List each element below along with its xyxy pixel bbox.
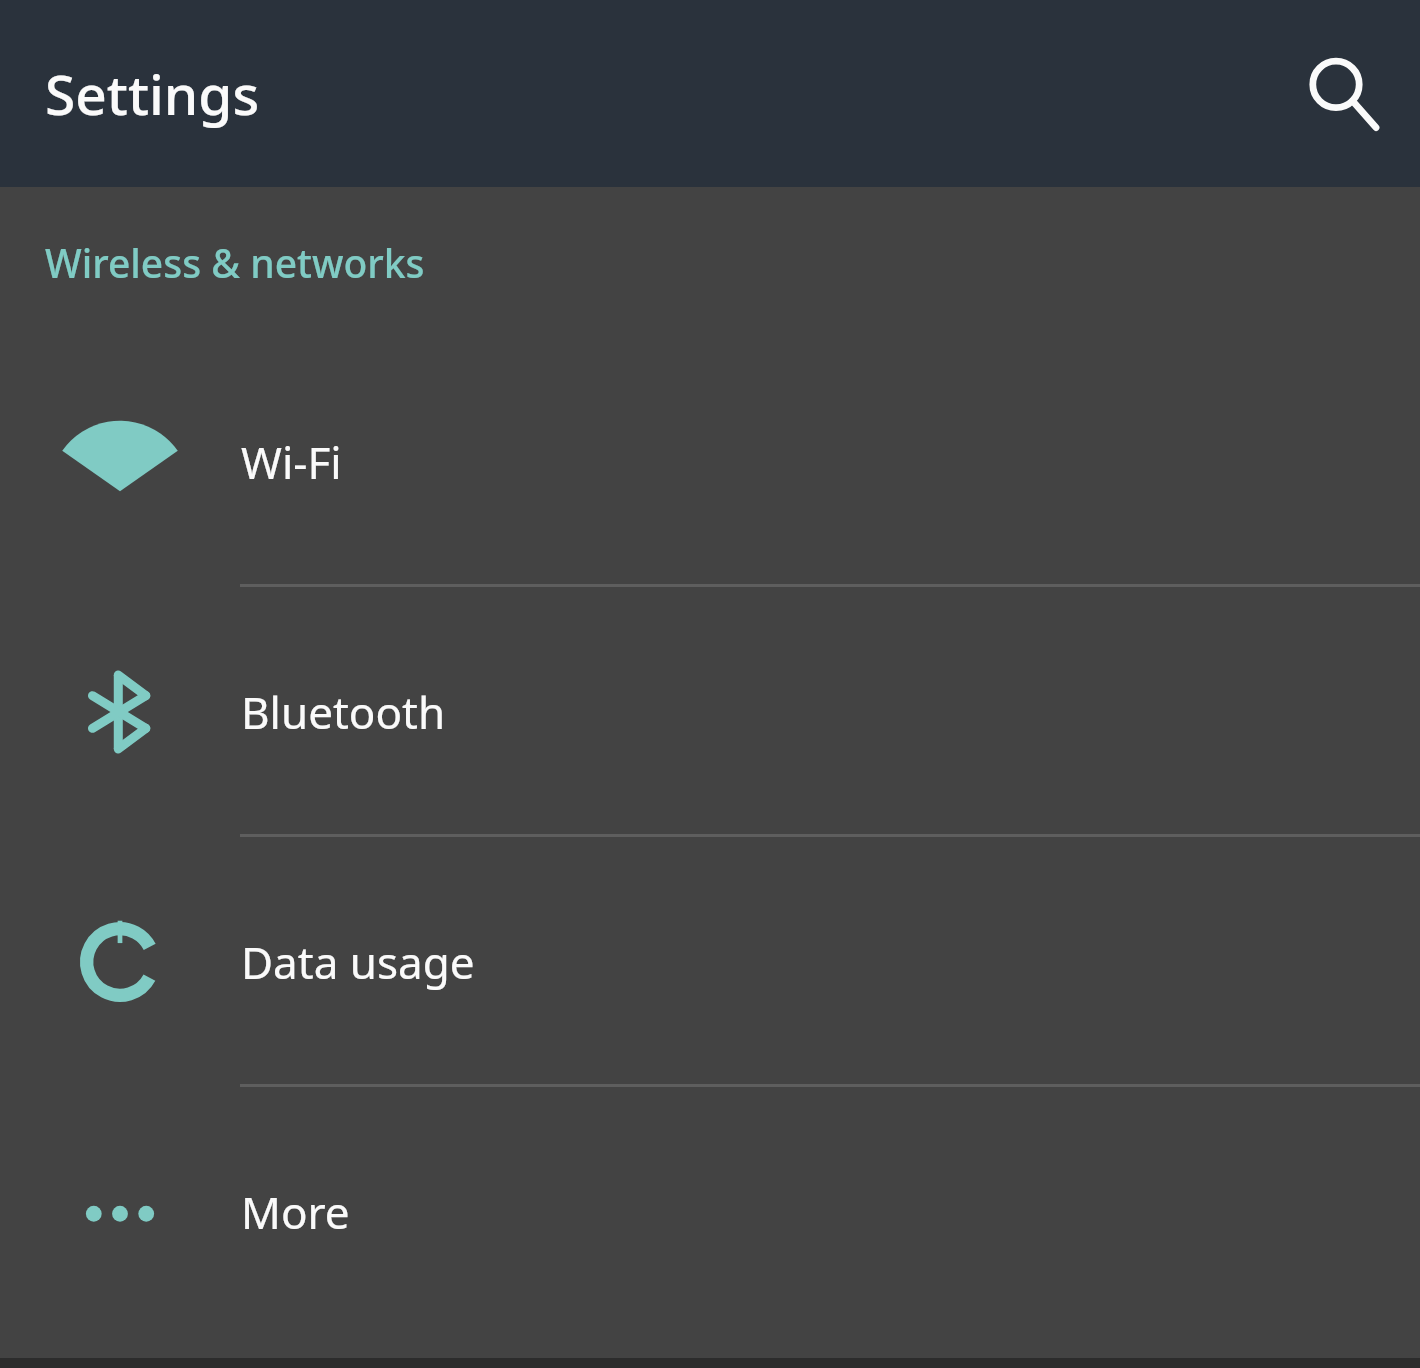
staticText: Wireless & networks xyxy=(45,236,425,289)
button[interactable]: Data usage xyxy=(0,837,1420,1087)
staticText: Settings xyxy=(45,56,260,131)
button[interactable]: Bluetooth xyxy=(0,587,1420,837)
staticText: Wi-Fi xyxy=(241,432,342,492)
staticText: Data usage xyxy=(241,932,475,992)
staticText: Bluetooth xyxy=(241,682,446,742)
button[interactable]: More xyxy=(0,1087,1420,1337)
staticText: More xyxy=(241,1182,350,1242)
button[interactable]: Wi-Fi xyxy=(0,337,1420,587)
button[interactable]: Search xyxy=(1296,46,1392,142)
